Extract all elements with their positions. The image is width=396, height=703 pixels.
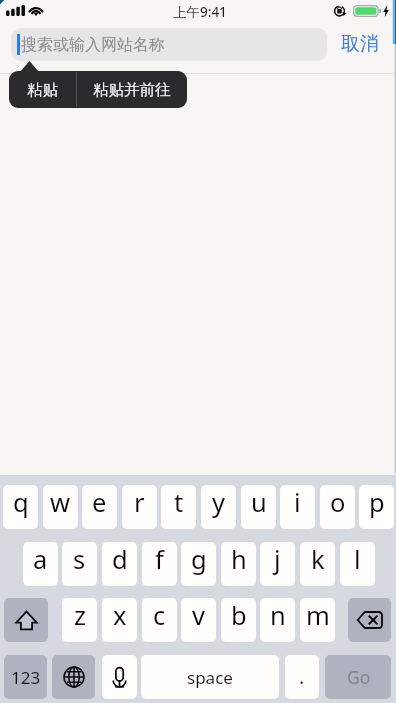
staticText: a [33, 542, 48, 577]
button[interactable]: n [260, 598, 295, 642]
button[interactable]: g [181, 542, 216, 586]
button[interactable]: t [161, 485, 196, 529]
button[interactable]: k [300, 542, 335, 586]
staticText: Go [347, 665, 371, 689]
button[interactable]: f [142, 542, 177, 586]
button[interactable]: 123 [4, 655, 47, 699]
staticText: d [112, 542, 128, 577]
button[interactable]: 搜索或输入网站名称 [11, 28, 327, 61]
button[interactable]: p [359, 485, 394, 529]
button[interactable]: z [62, 598, 97, 642]
button[interactable]: q [3, 485, 38, 529]
staticText: z [74, 598, 86, 633]
staticText: space [187, 666, 233, 689]
staticText: j [274, 542, 281, 577]
button[interactable]: m [300, 598, 335, 642]
staticText: c [153, 598, 166, 633]
button[interactable]: Shift [4, 598, 48, 642]
staticText: t [174, 485, 184, 520]
staticText: u [251, 485, 267, 520]
staticText: n [270, 598, 286, 633]
staticText: 搜索或输入网站名称 [21, 35, 165, 55]
button[interactable]: Dictation [102, 655, 137, 699]
staticText: r [134, 485, 145, 520]
button[interactable]: i [280, 485, 315, 529]
button[interactable]: a [23, 542, 58, 586]
button[interactable]: j [260, 542, 295, 586]
button[interactable]: b [221, 598, 256, 642]
button[interactable]: e [82, 485, 117, 529]
button[interactable]: 粘贴并前往 [77, 71, 187, 108]
button[interactable]: Switch keyboard [52, 655, 95, 699]
button[interactable]: x [102, 598, 137, 642]
button[interactable]: Backspace [348, 598, 391, 642]
staticText: k [311, 542, 325, 577]
staticText: l [354, 542, 361, 577]
staticText: 上午9:41 [173, 3, 227, 21]
staticText: w [50, 485, 71, 520]
button[interactable]: o [320, 485, 355, 529]
staticText: 取消 [341, 32, 379, 56]
button[interactable]: y [201, 485, 236, 529]
staticText: i [294, 485, 301, 520]
staticText: 粘贴并前往 [93, 80, 171, 100]
staticText: h [231, 542, 247, 577]
staticText: q [13, 485, 29, 520]
button[interactable]: Go [325, 655, 391, 699]
button[interactable]: 粘贴 [9, 71, 76, 108]
staticText: 123 [11, 666, 41, 689]
staticText: o [330, 485, 346, 520]
button[interactable]: h [221, 542, 256, 586]
staticText: e [92, 485, 107, 520]
button[interactable]: s [62, 542, 97, 586]
staticText: p [369, 485, 385, 520]
staticText: m [306, 598, 330, 633]
button[interactable]: d [102, 542, 137, 586]
button[interactable]: 取消 [332, 29, 387, 59]
staticText: . [299, 663, 305, 690]
button[interactable]: u [241, 485, 276, 529]
staticText: y [212, 485, 226, 520]
staticText: 粘贴 [27, 80, 58, 100]
button[interactable]: space [141, 655, 279, 699]
staticText: v [192, 598, 205, 633]
staticText: b [231, 598, 247, 633]
button[interactable]: r [122, 485, 157, 529]
button[interactable]: c [142, 598, 177, 642]
staticText: s [73, 542, 86, 577]
staticText: g [191, 542, 207, 577]
button[interactable]: . [285, 655, 319, 699]
staticText: x [113, 598, 127, 633]
staticText: f [155, 542, 164, 577]
button[interactable]: v [181, 598, 216, 642]
button[interactable]: w [43, 485, 78, 529]
button[interactable]: l [340, 542, 375, 586]
